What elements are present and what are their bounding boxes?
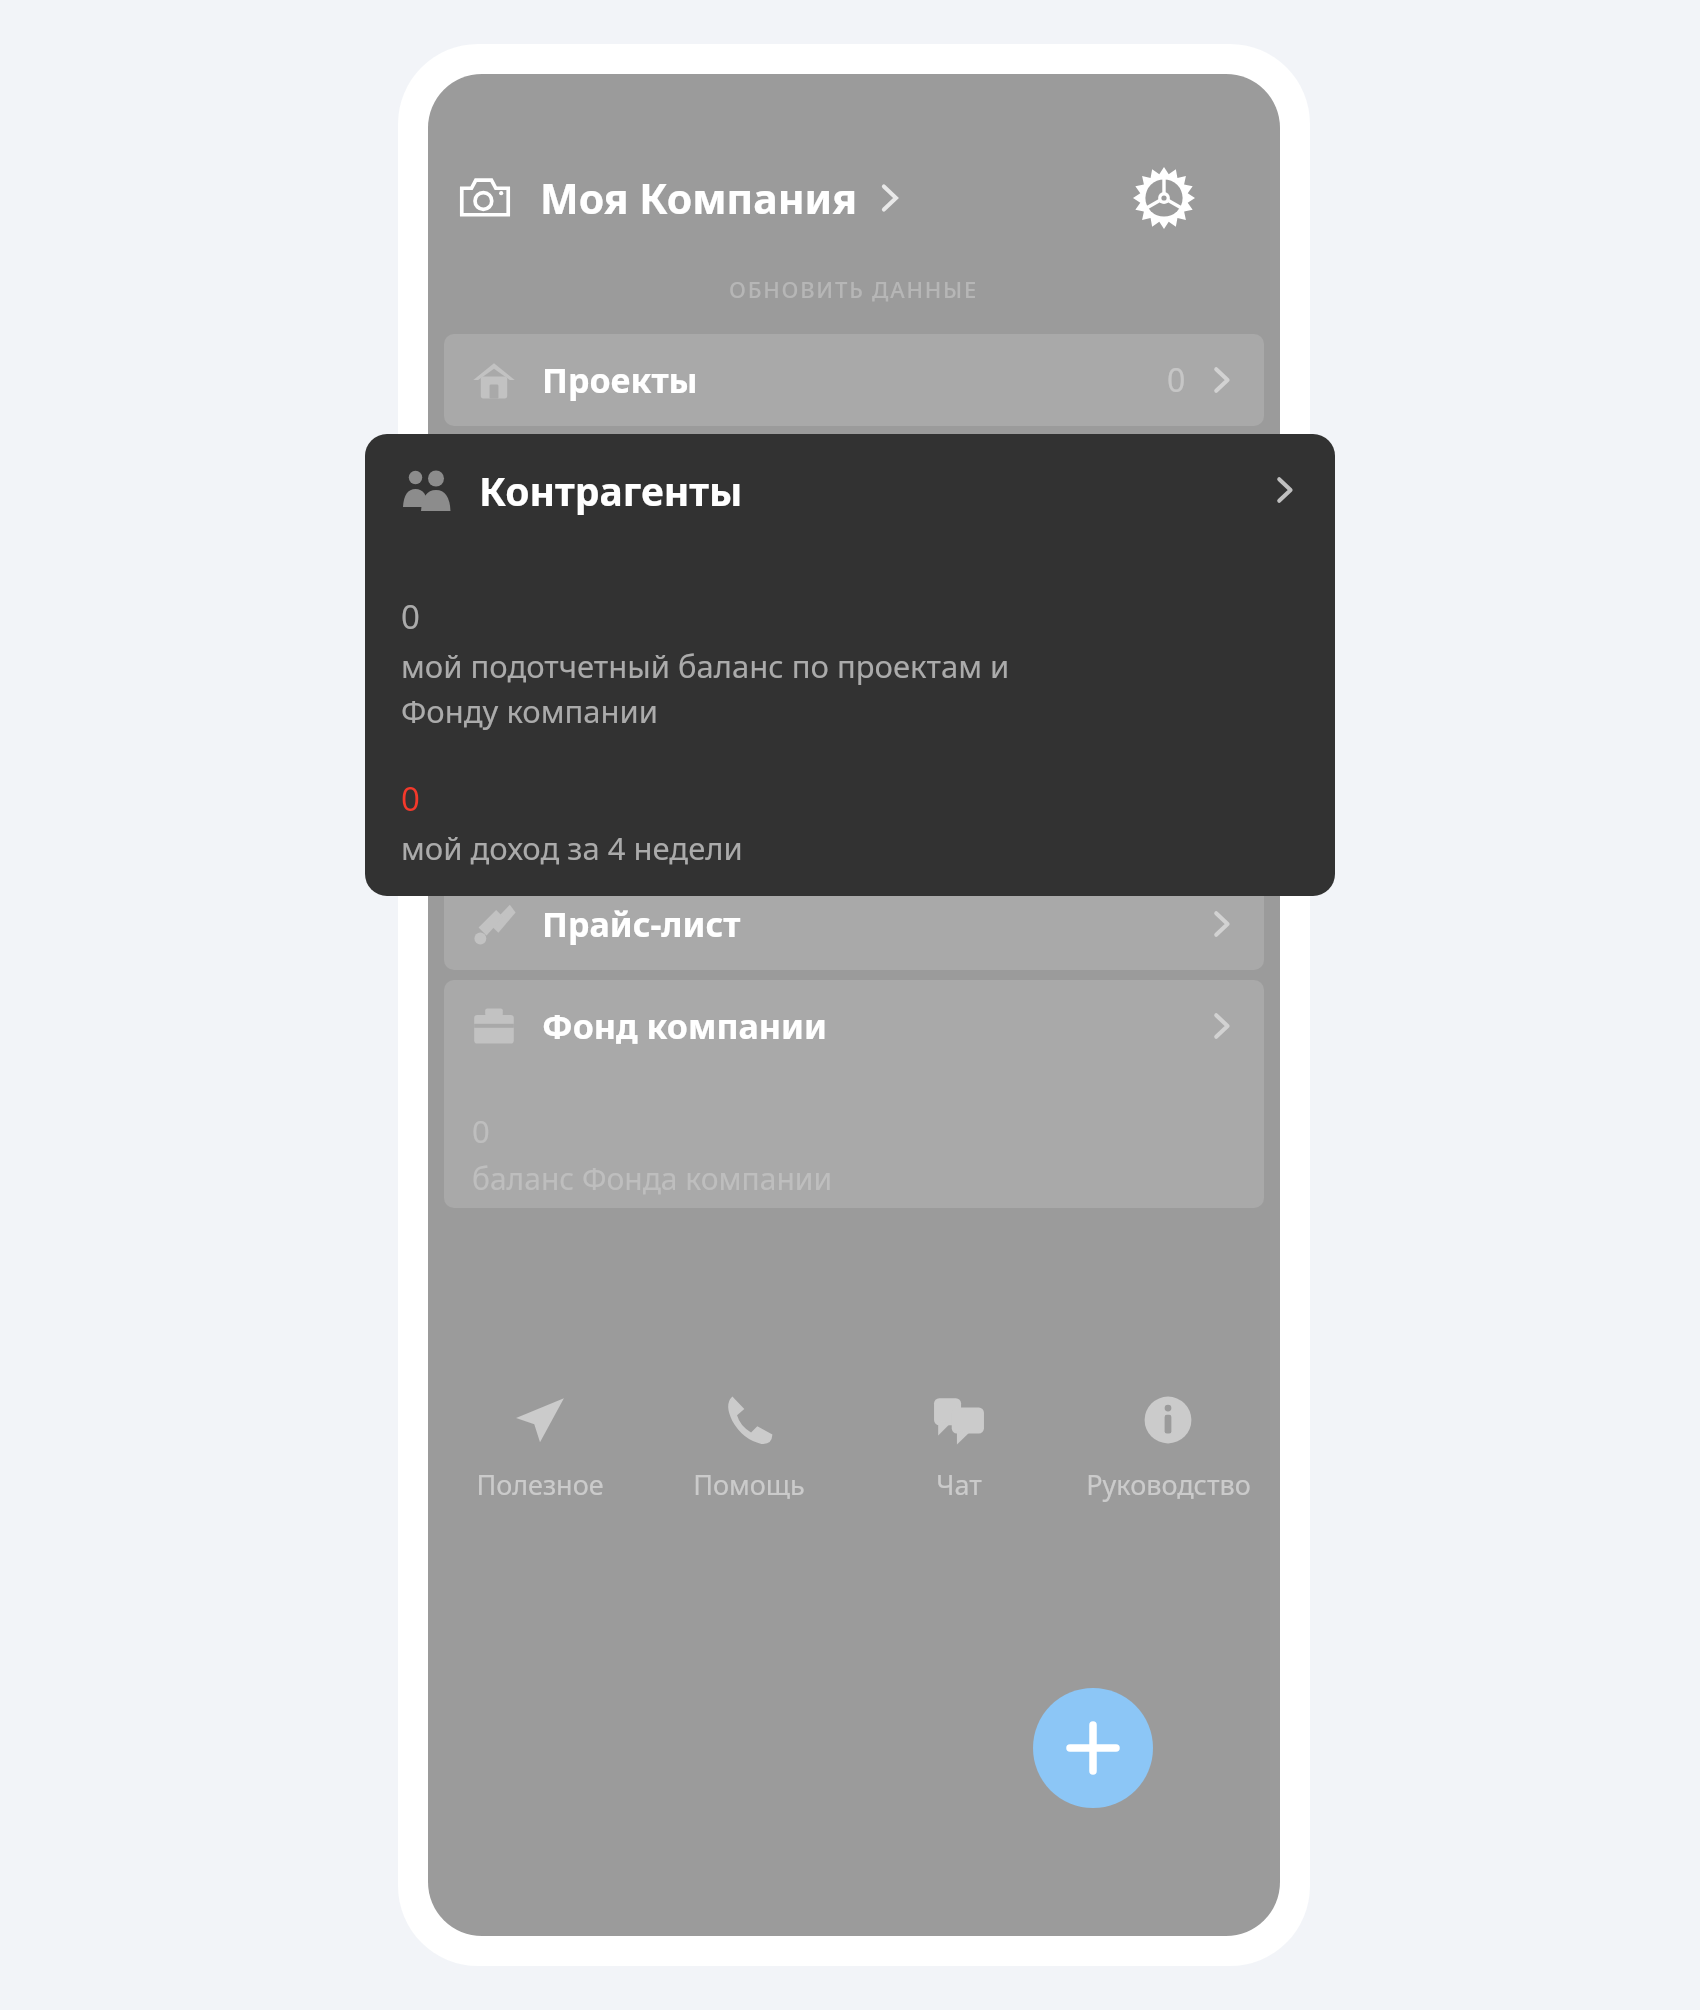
staticText: мой подотчетный баланс по проектам и Фон… [401,645,1010,732]
staticText: 0 [472,1110,490,1152]
staticText: ОБНОВИТЬ ДАННЫЕ [729,274,979,304]
button[interactable]: Проекты [444,334,1264,426]
staticText: баланс Фонда компании [472,1158,833,1199]
button[interactable]: Моя Компания [458,152,978,244]
staticText: История событий [542,801,851,847]
staticText: 0 [401,594,420,639]
button[interactable]: Add [1033,1688,1153,1808]
button[interactable]: Полезное [442,1384,638,1513]
staticText: Помощь [693,1466,805,1503]
staticText: 0 [401,776,420,821]
staticText: Моя Компания [540,170,857,226]
staticText: Чат [936,1466,982,1503]
staticText: мой доход за 4 недели [401,827,743,869]
staticText: 0 [1167,358,1186,402]
staticText: Руководство [1086,1466,1251,1503]
button[interactable]: ОБНОВИТЬ ДАННЫЕ [428,260,1280,318]
button[interactable]: Помощь [651,1384,847,1513]
button[interactable]: Settings [1116,150,1212,246]
button[interactable]: Чат [861,1384,1057,1513]
button[interactable]: Фонд компании [444,980,1264,1208]
staticText: Контрагенты [479,464,743,517]
button[interactable]: История событий [444,778,1264,870]
button[interactable]: Руководство [1070,1384,1266,1513]
button[interactable]: Контрагенты [365,434,1335,896]
button[interactable]: Прайс-лист [444,878,1264,970]
staticText: Проекты [542,357,698,403]
button[interactable]: Контрагенты [444,434,1264,770]
staticText: Полезное [476,1466,604,1503]
staticText: Контрагенты [542,457,772,503]
staticText: Прайс-лист [542,901,741,947]
staticText: Фонд компании [542,1003,827,1049]
